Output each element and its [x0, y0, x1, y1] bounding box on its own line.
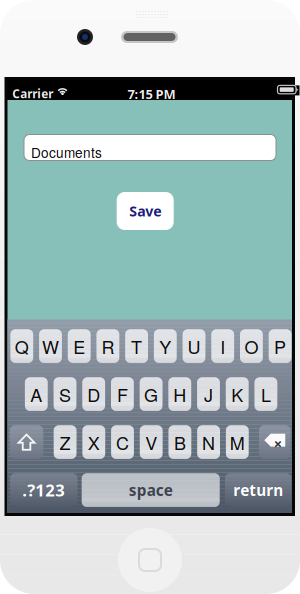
button[interactable]: Delete — [259, 425, 290, 459]
staticText: × — [274, 434, 282, 454]
button[interactable]: Save — [117, 192, 174, 230]
button[interactable]: Y — [154, 329, 177, 363]
staticText: Z — [60, 429, 71, 455]
staticText: X — [88, 429, 100, 455]
button[interactable]: M — [226, 425, 249, 459]
button[interactable]: J — [197, 377, 220, 411]
staticText: O — [244, 333, 258, 359]
staticText: T — [131, 333, 142, 359]
staticText: M — [230, 429, 245, 455]
button[interactable]: H — [168, 377, 191, 411]
button[interactable]: space — [82, 473, 220, 507]
button[interactable]: P — [269, 329, 291, 363]
staticText: B — [174, 429, 186, 455]
button[interactable]: D — [82, 377, 105, 411]
button[interactable]: S — [54, 377, 76, 411]
button[interactable]: X — [82, 425, 105, 459]
button[interactable]: C — [111, 425, 134, 459]
staticText: W — [42, 333, 59, 359]
button[interactable]: L — [254, 377, 277, 411]
button[interactable]: N — [197, 425, 220, 459]
staticText: L — [261, 381, 271, 407]
staticText: F — [117, 381, 128, 407]
staticText: space — [129, 480, 173, 501]
staticText: C — [116, 429, 129, 455]
button[interactable]: Documents — [24, 134, 276, 160]
button[interactable]: return — [225, 473, 291, 507]
staticText: E — [73, 333, 85, 359]
staticText: .?123 — [22, 479, 65, 501]
staticText: S — [59, 381, 71, 407]
button[interactable]: V — [140, 425, 163, 459]
button[interactable]: B — [168, 425, 191, 459]
button[interactable]: T — [125, 329, 148, 363]
button[interactable]: W — [39, 329, 62, 363]
staticText: 7:15 PM — [127, 85, 175, 103]
button[interactable]: I — [211, 329, 234, 363]
button[interactable]: Z — [54, 425, 76, 459]
staticText: A — [30, 381, 42, 407]
staticText: J — [204, 381, 213, 407]
button[interactable]: K — [226, 377, 249, 411]
staticText: G — [144, 381, 158, 407]
staticText: Save — [129, 201, 161, 221]
staticText: return — [233, 480, 283, 501]
staticText: D — [87, 381, 100, 407]
staticText: U — [187, 333, 200, 359]
button[interactable]: .?123 — [10, 473, 77, 507]
staticText: R — [101, 333, 114, 359]
button[interactable]: G — [140, 377, 162, 411]
button[interactable]: U — [183, 329, 205, 363]
button[interactable]: A — [25, 377, 48, 411]
staticText: N — [202, 429, 215, 455]
button[interactable]: F — [111, 377, 134, 411]
staticText: Q — [15, 333, 29, 359]
staticText: Documents — [31, 142, 102, 162]
staticText: I — [220, 333, 225, 359]
button[interactable]: E — [68, 329, 91, 363]
staticText: Carrier — [12, 86, 53, 102]
button[interactable]: Shift — [10, 425, 43, 459]
staticText: H — [173, 381, 186, 407]
button[interactable]: O — [240, 329, 263, 363]
staticText: P — [274, 333, 286, 359]
button[interactable]: R — [96, 329, 119, 363]
button[interactable]: Q — [10, 329, 33, 363]
staticText: Y — [159, 333, 171, 359]
staticText: V — [145, 429, 157, 455]
staticText: K — [231, 381, 243, 407]
